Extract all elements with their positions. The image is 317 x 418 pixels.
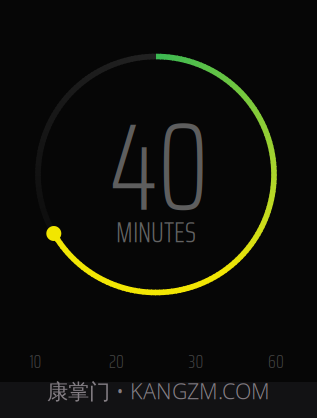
button[interactable]: 20	[96, 351, 136, 371]
button[interactable]: 30	[176, 351, 216, 371]
staticText: MINUTES	[116, 209, 196, 255]
staticText: 康掌门 • KANGZM.COM	[47, 377, 270, 405]
button[interactable]: Timer dial, 40 minutes	[0, 0, 317, 418]
staticText: 20	[109, 347, 124, 376]
staticText: 10	[29, 347, 41, 376]
staticText: 40	[109, 68, 208, 264]
staticText: 60	[268, 347, 284, 376]
staticText: 30	[188, 347, 203, 376]
button[interactable]: 10	[15, 351, 55, 371]
button[interactable]: 60	[256, 351, 296, 371]
